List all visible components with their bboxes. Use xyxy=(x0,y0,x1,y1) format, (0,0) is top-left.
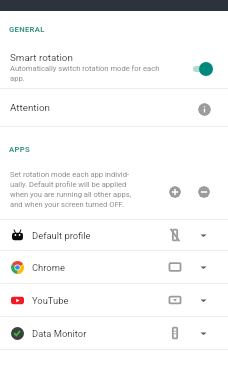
button[interactable]: Default profile xyxy=(0,220,228,250)
staticText: Chrome xyxy=(32,262,168,273)
staticText: Smart rotation xyxy=(10,52,73,63)
button[interactable]: Smart rotation xyxy=(0,41,228,88)
button[interactable]: Attention xyxy=(0,89,228,126)
button[interactable]: Add app xyxy=(169,186,181,198)
staticText: Set rotation mode each app individ- uall… xyxy=(10,170,132,209)
staticText: Attention xyxy=(10,102,198,113)
staticText: YouTube xyxy=(32,295,168,306)
staticText: Data Monitor xyxy=(32,328,168,339)
staticText: Automatically switch rotation mode for e… xyxy=(10,64,160,83)
button[interactable]: Chrome xyxy=(0,251,228,283)
other: Info xyxy=(198,103,211,116)
staticText: Default profile xyxy=(32,230,168,241)
button[interactable]: Remove app xyxy=(198,186,210,198)
button[interactable]: Data Monitor xyxy=(0,317,228,349)
button[interactable]: YouTube xyxy=(0,284,228,316)
staticText: GENERAL xyxy=(9,25,45,34)
staticText: APPS xyxy=(9,145,31,154)
